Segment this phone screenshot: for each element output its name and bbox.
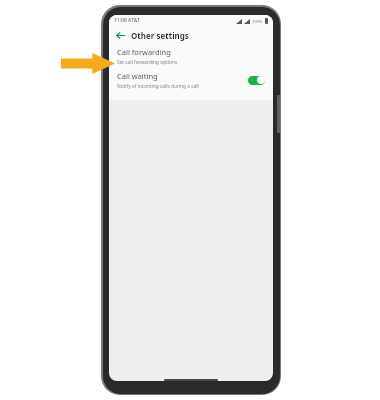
staticText: Call waiting [117, 71, 158, 81]
staticText: Other settings [131, 30, 189, 41]
button[interactable]: Back [114, 29, 127, 42]
staticText: Call forwarding [117, 47, 171, 57]
button[interactable]: Call waiting [109, 68, 273, 92]
button[interactable]: Call waiting toggle [248, 75, 265, 85]
button[interactable]: Call forwarding [109, 44, 273, 68]
staticText: 100% [252, 19, 263, 24]
staticText: Notify of incoming calls during a call [117, 83, 199, 90]
staticText: Set call forwarding options [117, 59, 178, 66]
staticText: 11:08 AT&T [114, 17, 140, 24]
